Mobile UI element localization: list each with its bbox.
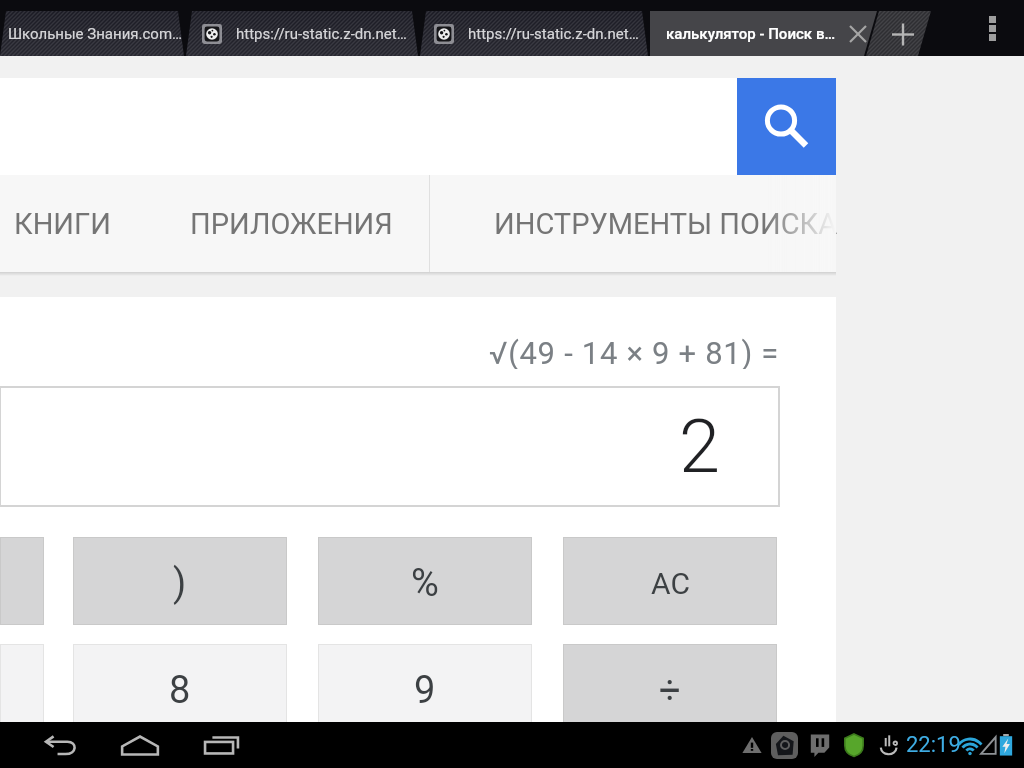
button[interactable]: More options xyxy=(968,4,1016,52)
button[interactable]: Browser tab xyxy=(650,11,881,56)
button[interactable]: ИНСТРУМЕНТЫ ПОИСКА xyxy=(430,175,902,272)
button[interactable]: AC xyxy=(563,537,777,625)
staticText: √(49 - 14 × 9 + 81) = xyxy=(489,335,780,369)
button[interactable]: ) xyxy=(73,537,287,625)
staticText: 8 xyxy=(169,668,191,713)
staticText: калькулятор - Поиск в… xyxy=(666,25,836,43)
button[interactable]: Back xyxy=(26,722,96,768)
staticText: 22:19 xyxy=(906,732,961,758)
staticText: 2 xyxy=(679,403,721,490)
staticText: Школьные Знания.com… xyxy=(8,25,183,43)
staticText: AC xyxy=(651,566,690,601)
button[interactable]: Browser tab xyxy=(0,11,186,56)
button[interactable]: Close tab xyxy=(836,12,880,56)
button[interactable]: ПРИЛОЖЕНИЯ xyxy=(175,175,407,272)
staticText: КНИГИ xyxy=(14,207,111,241)
staticText: ) xyxy=(173,561,187,606)
button[interactable]: 9 xyxy=(318,644,532,732)
staticText: https://ru-static.z-dn.net… xyxy=(468,25,639,43)
staticText: https://ru-static.z-dn.net… xyxy=(236,25,407,43)
staticText: % xyxy=(411,561,439,606)
staticText: ПРИЛОЖЕНИЯ xyxy=(190,207,393,241)
button[interactable]: Recent apps xyxy=(186,722,256,768)
button[interactable]: Calculator key xyxy=(0,537,44,625)
button[interactable]: 8 xyxy=(73,644,287,732)
staticText: ÷ xyxy=(659,668,681,713)
button[interactable]: Search xyxy=(737,78,836,175)
staticText: ИНСТРУМЕНТЫ ПОИСКА xyxy=(494,207,838,241)
button[interactable]: Home xyxy=(105,722,175,768)
staticText: 9 xyxy=(414,668,436,713)
button[interactable]: % xyxy=(318,537,532,625)
button[interactable]: Browser tab xyxy=(186,11,420,56)
button[interactable]: New tab xyxy=(872,11,934,56)
button[interactable]: Calculator key xyxy=(0,644,44,732)
button[interactable]: ÷ xyxy=(563,644,777,732)
button[interactable]: КНИГИ xyxy=(0,175,126,272)
button[interactable]: Browser tab xyxy=(420,11,650,56)
